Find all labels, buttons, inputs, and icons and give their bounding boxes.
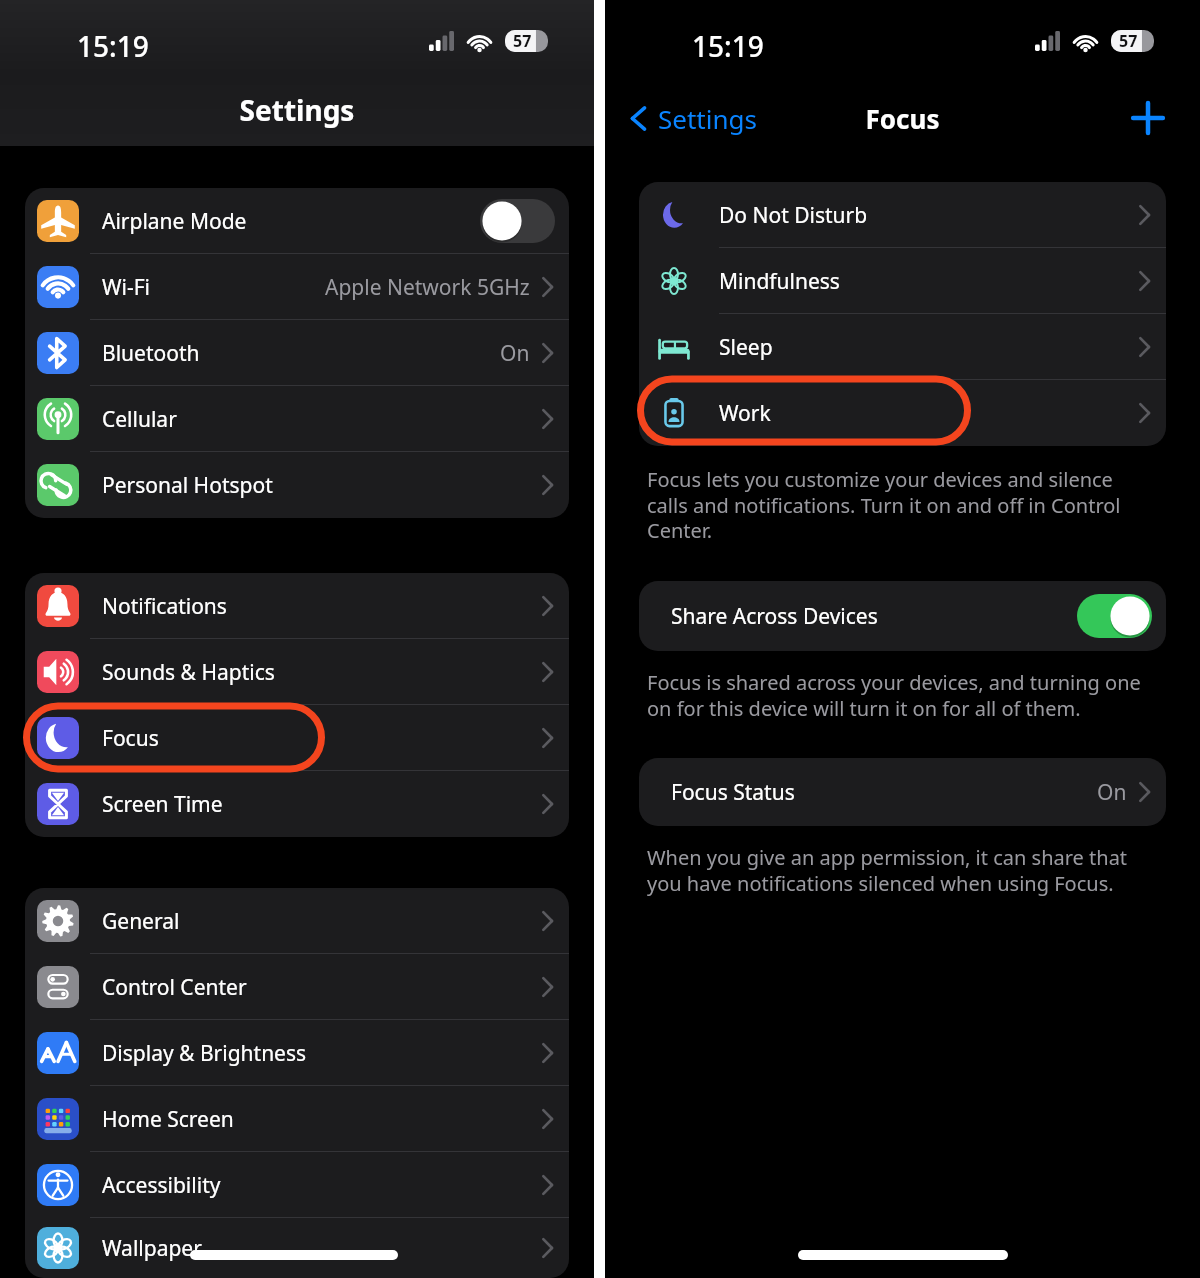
other: Off (480, 199, 555, 243)
staticText: Mindfulness (719, 267, 1137, 296)
button[interactable]: Bluetooth (25, 320, 569, 386)
staticText: Home Screen (102, 1105, 540, 1134)
staticText: Focus (605, 101, 1200, 136)
staticText: Wi-Fi (102, 273, 325, 302)
staticText: 15:19 (77, 27, 149, 65)
staticText: Control Center (102, 973, 540, 1002)
staticText: Airplane Mode (102, 207, 480, 236)
staticText: Cellular (102, 405, 540, 434)
staticText: Focus (102, 724, 540, 753)
button[interactable]: Work (639, 380, 1166, 446)
staticText: Wallpaper (102, 1234, 540, 1263)
button[interactable]: Display & Brightness (25, 1020, 569, 1086)
staticText: 15:19 (692, 27, 764, 65)
button[interactable]: Accessibility (25, 1152, 569, 1218)
button[interactable]: Do Not Disturb (639, 182, 1166, 248)
staticText: Accessibility (102, 1171, 540, 1200)
staticText: 57 (1119, 30, 1138, 52)
button[interactable]: Focus Status (639, 758, 1166, 826)
button[interactable]: Control Center (25, 954, 569, 1020)
staticText: Notifications (102, 592, 540, 621)
staticText: Share Across Devices (671, 602, 1077, 631)
button[interactable]: Home Screen (25, 1086, 569, 1152)
button[interactable]: Focus (25, 705, 569, 771)
staticText: Bluetooth (102, 339, 500, 368)
staticText: Apple Network 5GHz (325, 273, 530, 302)
button[interactable]: Cellular (25, 386, 569, 452)
button[interactable]: General (25, 888, 569, 954)
button[interactable]: Mindfulness (639, 248, 1166, 314)
staticText: 57 (513, 30, 532, 52)
staticText: Sounds & Haptics (102, 658, 540, 687)
staticText: On (500, 339, 530, 368)
staticText: Settings (0, 91, 594, 129)
staticText: Sleep (719, 333, 1137, 362)
staticText: Focus Status (671, 778, 1097, 807)
button[interactable]: Sleep (639, 314, 1166, 380)
staticText: Do Not Disturb (719, 201, 1137, 230)
button[interactable]: Sounds & Haptics (25, 639, 569, 705)
staticText: Work (719, 399, 1137, 428)
staticText: Focus lets you customize your devices an… (647, 466, 1158, 543)
button[interactable]: Add Focus (1124, 94, 1172, 142)
button[interactable]: Personal Hotspot (25, 452, 569, 518)
staticText: Screen Time (102, 790, 540, 819)
staticText: General (102, 907, 540, 936)
button[interactable]: Notifications (25, 573, 569, 639)
staticText: Settings (658, 101, 757, 136)
button[interactable]: Airplane Mode (25, 188, 569, 254)
other: On (1077, 594, 1152, 638)
button[interactable]: Settings (625, 95, 761, 142)
button[interactable]: Screen Time (25, 771, 569, 837)
staticText: Focus is shared across your devices, and… (647, 669, 1158, 721)
staticText: On (1097, 778, 1127, 807)
staticText: When you give an app permission, it can … (647, 844, 1158, 896)
button[interactable]: Wi-Fi (25, 254, 569, 320)
staticText: Display & Brightness (102, 1039, 540, 1068)
button[interactable]: Wallpaper (25, 1218, 569, 1278)
button[interactable]: Share Across Devices (639, 581, 1166, 651)
staticText: Personal Hotspot (102, 471, 540, 500)
